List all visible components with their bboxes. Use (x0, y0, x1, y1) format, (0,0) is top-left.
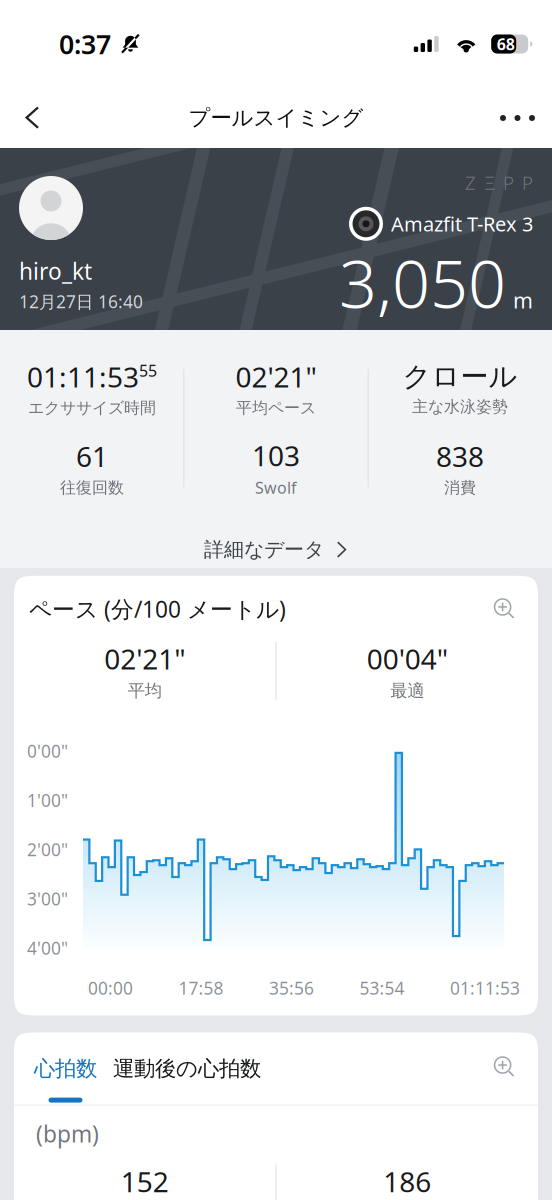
staticText: hiro_kt (19, 256, 92, 286)
staticText: エクササイズ時間 (28, 398, 156, 418)
staticText: Amazfit T-Rex 3 (391, 210, 533, 237)
staticText: 1'00" (27, 789, 68, 812)
staticText: 152 (121, 1163, 169, 1200)
staticText: 3'00" (27, 887, 68, 910)
staticText: 最適 (390, 680, 424, 701)
staticText: 3,050 (339, 238, 506, 326)
button[interactable]: 心拍数 (34, 1055, 97, 1103)
staticText: 35:56 (269, 976, 314, 999)
staticText: 4'00" (27, 936, 68, 959)
button[interactable]: 詳細なデータ (0, 535, 552, 564)
staticText: 平均 (128, 680, 162, 701)
staticText: 55 (139, 360, 157, 381)
staticText: 主な水泳姿勢 (412, 397, 508, 416)
staticText: 平均ペース (236, 398, 316, 418)
staticText: ZΞPP (465, 170, 533, 195)
staticText: 0:37 (59, 26, 111, 62)
staticText: ペース (分/100 メートル) (29, 594, 286, 624)
staticText: 02'21" (235, 358, 316, 395)
staticText: プールスイミング (188, 105, 363, 131)
staticText: 61 (76, 438, 108, 475)
button[interactable]: Zoom in (493, 1055, 516, 1078)
staticText: 詳細なデータ (204, 537, 324, 562)
staticText: 運動後の心拍数 (113, 1055, 261, 1082)
staticText: 01:11:53 (27, 358, 139, 395)
staticText: 17:58 (178, 976, 223, 999)
staticText: 02'21" (104, 640, 185, 677)
button[interactable]: 運動後の心拍数 (113, 1055, 261, 1082)
staticText: Swolf (255, 477, 297, 498)
staticText: 186 (383, 1163, 431, 1200)
staticText: m (513, 286, 533, 314)
button[interactable]: Zoom in (493, 597, 516, 620)
staticText: 12月27日 16:40 (19, 290, 143, 313)
button[interactable]: More options (477, 91, 552, 145)
staticText: 消費 (444, 478, 476, 497)
staticText: 53:54 (359, 976, 404, 999)
staticText: 心拍数 (34, 1055, 97, 1082)
staticText: (bpm) (36, 1119, 99, 1149)
staticText: 00:00 (88, 976, 133, 999)
staticText: 68 (497, 33, 515, 55)
staticText: 往復回数 (60, 478, 124, 497)
staticText: 01:11:53 (450, 976, 520, 999)
staticText: 2'00" (27, 838, 68, 861)
staticText: 838 (436, 438, 484, 475)
staticText: 0'00" (27, 739, 68, 762)
staticText: クロール (402, 359, 517, 394)
staticText: 00'04" (367, 640, 448, 677)
staticText: 103 (252, 437, 300, 474)
button[interactable]: Back (0, 91, 64, 145)
